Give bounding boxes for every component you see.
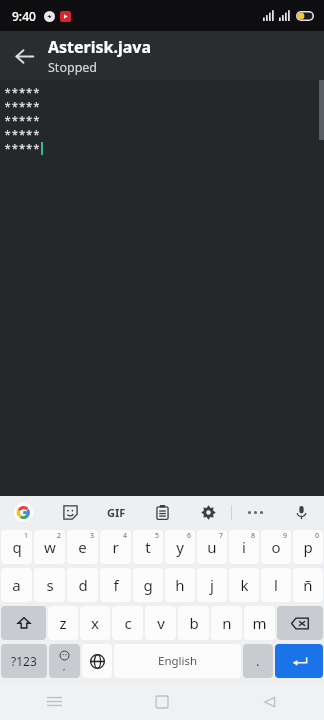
staticText: ?123 [11, 653, 37, 669]
button[interactable]: Settings [185, 496, 231, 528]
staticText: u [207, 537, 217, 557]
button[interactable]: d [67, 568, 98, 602]
button[interactable]: English [114, 644, 241, 678]
button[interactable]: c [112, 606, 143, 640]
staticText: ***** [4, 141, 41, 155]
button[interactable]: w [34, 530, 65, 564]
button[interactable]: Google search [0, 496, 47, 528]
staticText: GIF [107, 505, 126, 520]
staticText: 7 [219, 531, 224, 541]
staticText: English [158, 653, 198, 669]
button[interactable]: t [133, 530, 163, 564]
button[interactable]: ñ [293, 568, 323, 602]
staticText: s [46, 575, 54, 595]
button[interactable]: Home [108, 683, 216, 720]
staticText: h [175, 575, 185, 595]
staticText: Stopped [48, 59, 98, 76]
button[interactable]: Symbols [1, 644, 47, 678]
staticText: c [124, 613, 132, 633]
staticText: b [189, 613, 199, 633]
button[interactable]: r [100, 530, 131, 564]
button[interactable]: Emoji [49, 644, 80, 678]
button[interactable]: Recent apps [0, 683, 108, 720]
staticText: e [78, 537, 87, 557]
staticText: , [63, 660, 66, 672]
button[interactable]: Stickers [47, 496, 93, 528]
button[interactable]: q [1, 530, 32, 564]
staticText: Asterisk.java [48, 36, 152, 58]
staticText: 9:40 [12, 8, 36, 24]
staticText: i [242, 537, 246, 557]
staticText: d [78, 575, 88, 595]
staticText: k [240, 575, 249, 595]
staticText: r [112, 537, 119, 557]
button[interactable]: k [229, 568, 259, 602]
staticText: 3 [90, 531, 95, 541]
button[interactable]: Shift [1, 606, 46, 640]
staticText: m [252, 613, 267, 633]
staticText: 2 [57, 531, 62, 541]
button[interactable]: Voice input [278, 496, 324, 528]
staticText: t [145, 537, 151, 557]
staticText: 9 [283, 531, 288, 541]
button[interactable]: Period [243, 644, 273, 678]
button[interactable]: h [165, 568, 195, 602]
staticText: ***** [4, 99, 41, 113]
button[interactable]: v [145, 606, 176, 640]
staticText: f [113, 575, 119, 595]
button[interactable]: Clipboard [139, 496, 185, 528]
staticText: v [157, 613, 165, 633]
button[interactable]: More options [232, 496, 278, 528]
staticText: l [274, 575, 278, 595]
button[interactable]: n [211, 606, 242, 640]
staticText: w [44, 537, 56, 557]
staticText: ***** [4, 85, 41, 99]
button[interactable]: e [67, 530, 98, 564]
button[interactable]: b [178, 606, 209, 640]
staticText: y [176, 537, 184, 557]
button[interactable]: Back [216, 683, 324, 720]
button[interactable]: p [293, 530, 323, 564]
staticText: x [91, 613, 99, 633]
button[interactable]: Backspace [277, 606, 323, 640]
staticText: ***** [4, 113, 41, 127]
button[interactable]: l [261, 568, 291, 602]
staticText: 8 [251, 531, 256, 541]
staticText: g [143, 575, 153, 595]
button[interactable]: g [133, 568, 163, 602]
staticText: p [303, 537, 313, 557]
staticText: 0 [315, 531, 320, 541]
button[interactable]: GIF [93, 496, 139, 528]
button[interactable]: a [1, 568, 32, 602]
button[interactable]: y [165, 530, 195, 564]
staticText: 5 [155, 531, 160, 541]
staticText: . [256, 652, 260, 670]
staticText: q [12, 537, 22, 557]
button[interactable]: Change language [82, 644, 112, 678]
staticText: 4 [123, 531, 128, 541]
staticText: ñ [303, 575, 313, 595]
button[interactable]: s [34, 568, 65, 602]
staticText: a [12, 575, 21, 595]
staticText: ***** [4, 127, 41, 141]
staticText: 6 [187, 531, 192, 541]
button[interactable]: Enter [275, 644, 323, 678]
staticText: j [210, 575, 214, 595]
button[interactable]: m [244, 606, 275, 640]
button[interactable]: Back [0, 32, 48, 80]
staticText: 1 [24, 531, 29, 541]
button[interactable]: i [229, 530, 259, 564]
button[interactable]: j [197, 568, 227, 602]
staticText: o [271, 537, 281, 557]
button[interactable]: u [197, 530, 227, 564]
staticText: n [222, 613, 232, 633]
staticText: z [59, 613, 67, 633]
button[interactable]: f [100, 568, 131, 602]
button[interactable]: x [80, 606, 110, 640]
button[interactable]: o [261, 530, 291, 564]
button[interactable]: z [48, 606, 78, 640]
